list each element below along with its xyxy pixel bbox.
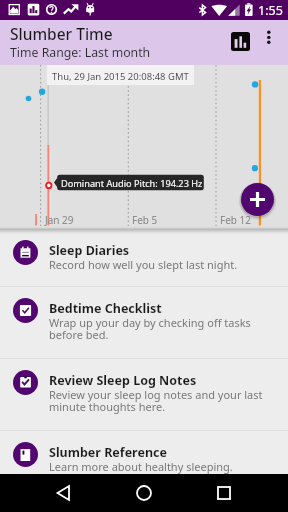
button[interactable]: Home bbox=[120, 474, 168, 512]
staticText: Review Sleep Log Notes bbox=[49, 372, 197, 389]
staticText: Time Range: Last month bbox=[10, 44, 151, 61]
staticText: Slumber Reference bbox=[49, 444, 167, 461]
staticText: before bed. bbox=[49, 327, 109, 342]
button[interactable]: More options bbox=[256, 30, 282, 55]
button[interactable]: Slumber Reference bbox=[0, 431, 288, 488]
staticText: Record how well you slept last night. bbox=[49, 257, 238, 272]
staticText: Feb 5 bbox=[132, 213, 158, 227]
staticText: minute thoughts here. bbox=[49, 399, 166, 414]
staticText: Dominant Audio Pitch: 194.23 Hz bbox=[61, 177, 203, 190]
button[interactable]: Bedtime Checklist bbox=[0, 287, 288, 358]
staticText: Slumber Time bbox=[10, 23, 113, 44]
staticText: Review your sleep log notes and your las… bbox=[49, 387, 263, 402]
staticText: Bedtime Checklist bbox=[49, 300, 162, 317]
button[interactable]: Back bbox=[40, 474, 88, 512]
staticText: 1:55 bbox=[258, 2, 283, 19]
staticText: Feb 12 bbox=[220, 213, 252, 227]
button[interactable]: Review Sleep Log Notes bbox=[0, 359, 288, 430]
staticText: Jan 29 bbox=[45, 213, 74, 227]
staticText: Wrap up your day by checking off tasks bbox=[49, 315, 251, 330]
staticText: Learn more about healthy sleeping. bbox=[49, 459, 233, 474]
button[interactable]: Recent apps bbox=[200, 474, 248, 512]
staticText: Thu, 29 Jan 2015 20:08:48 GMT bbox=[52, 70, 189, 83]
button[interactable]: Add bbox=[241, 183, 274, 216]
staticText: Sleep Diaries bbox=[49, 242, 130, 259]
button[interactable]: Sleep Diaries bbox=[0, 229, 288, 286]
button[interactable]: Statistics bbox=[231, 32, 250, 51]
